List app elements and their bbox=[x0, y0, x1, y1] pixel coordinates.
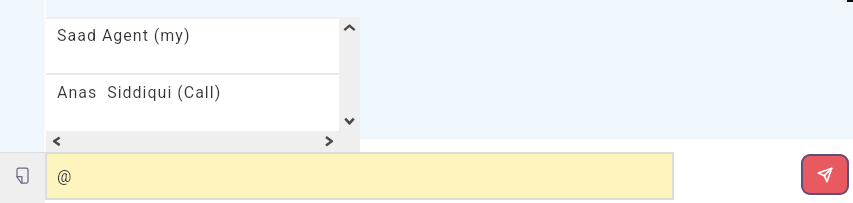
staticText: Saad Agent (my) bbox=[57, 26, 191, 45]
staticText: Anas Siddiqui (Call) bbox=[57, 83, 222, 102]
button[interactable]: Saad Agent (my) bbox=[46, 19, 339, 75]
button[interactable]: Anas Siddiqui (Call) bbox=[46, 76, 339, 131]
button[interactable]: Send bbox=[801, 154, 849, 195]
button[interactable]: Scroll right bbox=[318, 131, 339, 152]
button[interactable]: @ bbox=[45, 152, 674, 200]
button[interactable]: Insert note bbox=[0, 152, 45, 203]
button[interactable]: Scroll up bbox=[339, 17, 360, 38]
button[interactable]: Scroll down bbox=[339, 110, 360, 131]
button[interactable]: Scroll left bbox=[46, 131, 67, 152]
staticText: @ bbox=[57, 167, 72, 186]
